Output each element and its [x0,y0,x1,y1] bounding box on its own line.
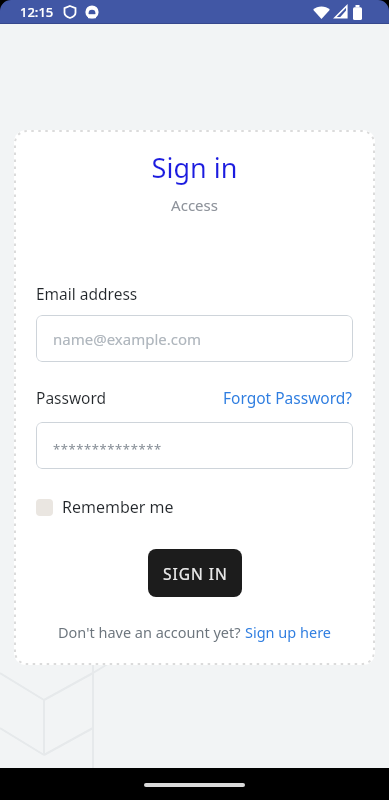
staticText: Email address [36,283,138,304]
staticText: Access [36,195,353,215]
button[interactable]: Sign up here [245,622,332,642]
button[interactable]: ************** [36,422,353,469]
button[interactable]: SIGN IN [148,549,242,597]
button[interactable]: Forgot Password? [223,387,353,408]
staticText: ************** [53,440,162,458]
staticText: name@example.com [53,329,202,349]
button[interactable] [0,768,389,800]
staticText: 12:15 [20,3,54,21]
staticText: Remember me [62,496,174,518]
staticText: SIGN IN [163,563,228,584]
staticText: Password [36,387,107,408]
staticText: Don't have an account yet? [58,622,245,642]
button[interactable]: Remember me [36,496,174,518]
button[interactable]: name@example.com [36,315,353,362]
staticText: Sign in [36,149,353,186]
